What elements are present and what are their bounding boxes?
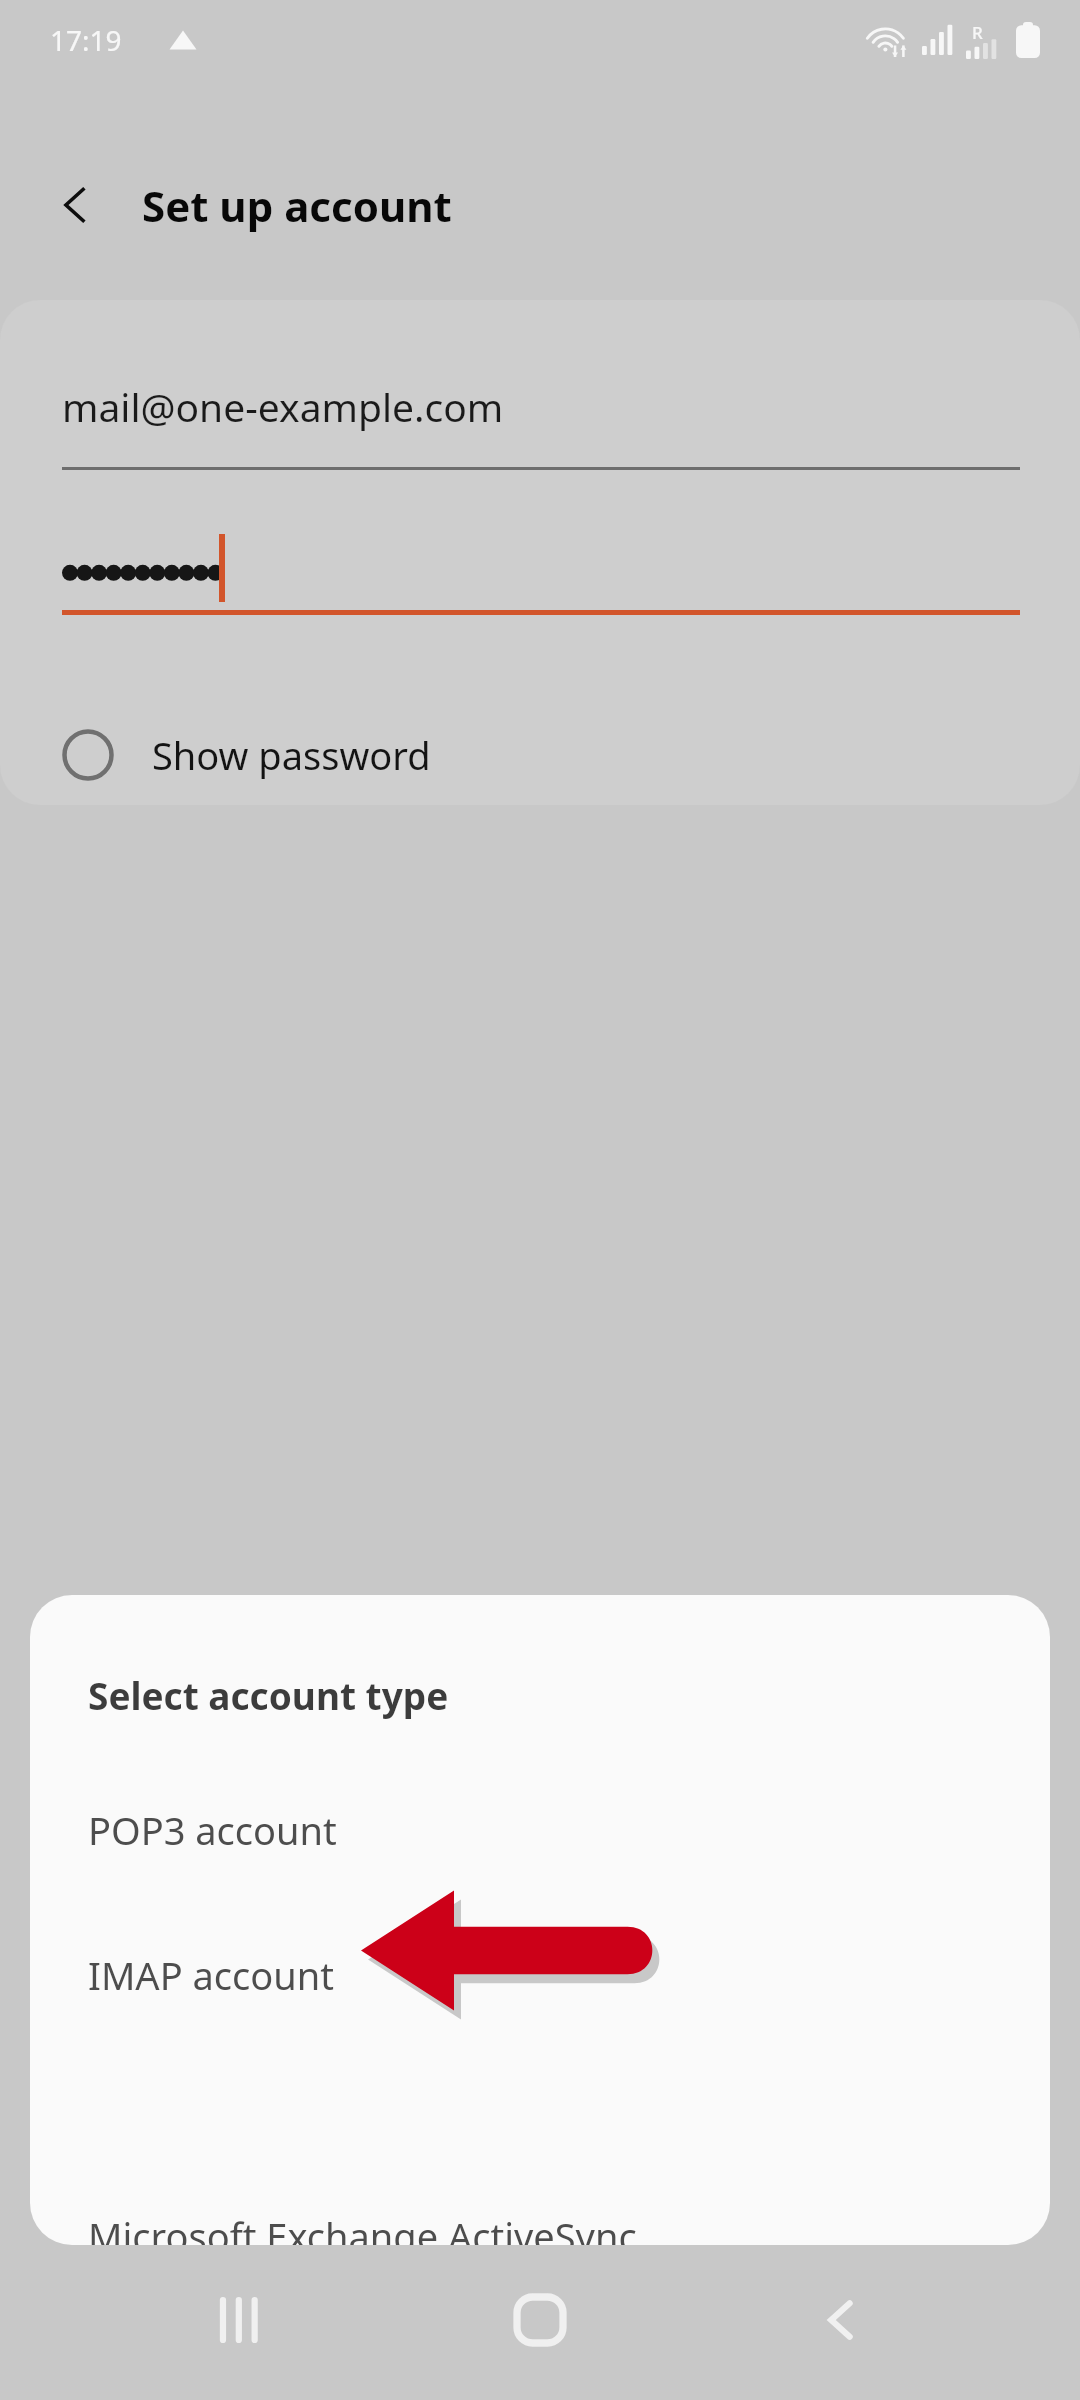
- staticText: mail@one-example.com: [62, 380, 504, 433]
- button[interactable]: Back: [785, 2265, 895, 2375]
- button[interactable]: IMAP account: [30, 1915, 1050, 2035]
- staticText: Set up account: [142, 177, 452, 234]
- button[interactable]: Microsoft Exchange ActiveSync: [30, 2210, 1050, 2245]
- button[interactable]: Show password: [0, 705, 1080, 805]
- staticText: IMAP account: [88, 1949, 334, 2001]
- staticText: R: [972, 21, 983, 44]
- button[interactable]: mail@one-example.com: [62, 380, 1020, 470]
- button[interactable]: Recents: [185, 2265, 295, 2375]
- staticText: Show password: [152, 729, 431, 781]
- staticText: Microsoft Exchange ActiveSync: [88, 2210, 637, 2245]
- staticText: 17:19: [50, 21, 122, 59]
- staticText: POP3 account: [88, 1804, 337, 1856]
- button[interactable]: [62, 520, 1020, 615]
- button[interactable]: Home: [485, 2265, 595, 2375]
- button[interactable]: Back: [40, 169, 112, 241]
- staticText: Select account type: [88, 1670, 449, 1720]
- button[interactable]: POP3 account: [30, 1770, 1050, 1890]
